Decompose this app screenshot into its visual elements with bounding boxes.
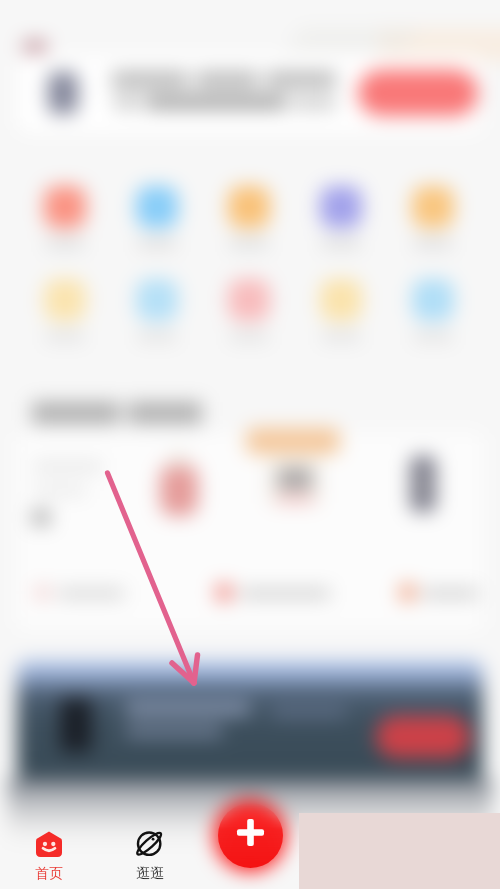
staticText: 逛逛 (136, 865, 164, 883)
button[interactable]: 逛逛 (110, 822, 190, 889)
button[interactable]: Post (218, 803, 283, 868)
button[interactable]: 首页 (9, 822, 89, 889)
staticText: 首页 (35, 865, 63, 883)
